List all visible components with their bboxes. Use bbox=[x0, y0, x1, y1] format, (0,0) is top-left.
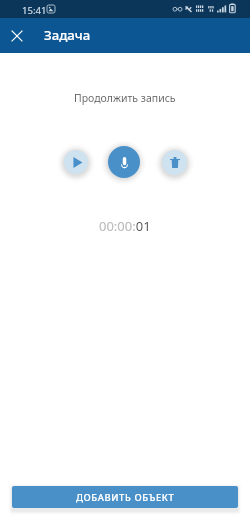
button[interactable]: Close bbox=[5, 24, 29, 48]
staticText: 15:41 bbox=[22, 4, 47, 17]
button[interactable]: Delete bbox=[162, 150, 187, 175]
button[interactable]: Record bbox=[108, 146, 140, 178]
button[interactable]: Play bbox=[64, 150, 88, 174]
staticText: 00:00:01 bbox=[99, 217, 151, 235]
staticText: Задача bbox=[44, 26, 91, 44]
staticText: ДОБАВИТЬ ОБЪЕКТ bbox=[76, 491, 175, 504]
staticText: Продолжить запись bbox=[74, 91, 176, 105]
button[interactable]: ДОБАВИТЬ ОБЪЕКТ bbox=[12, 486, 238, 508]
